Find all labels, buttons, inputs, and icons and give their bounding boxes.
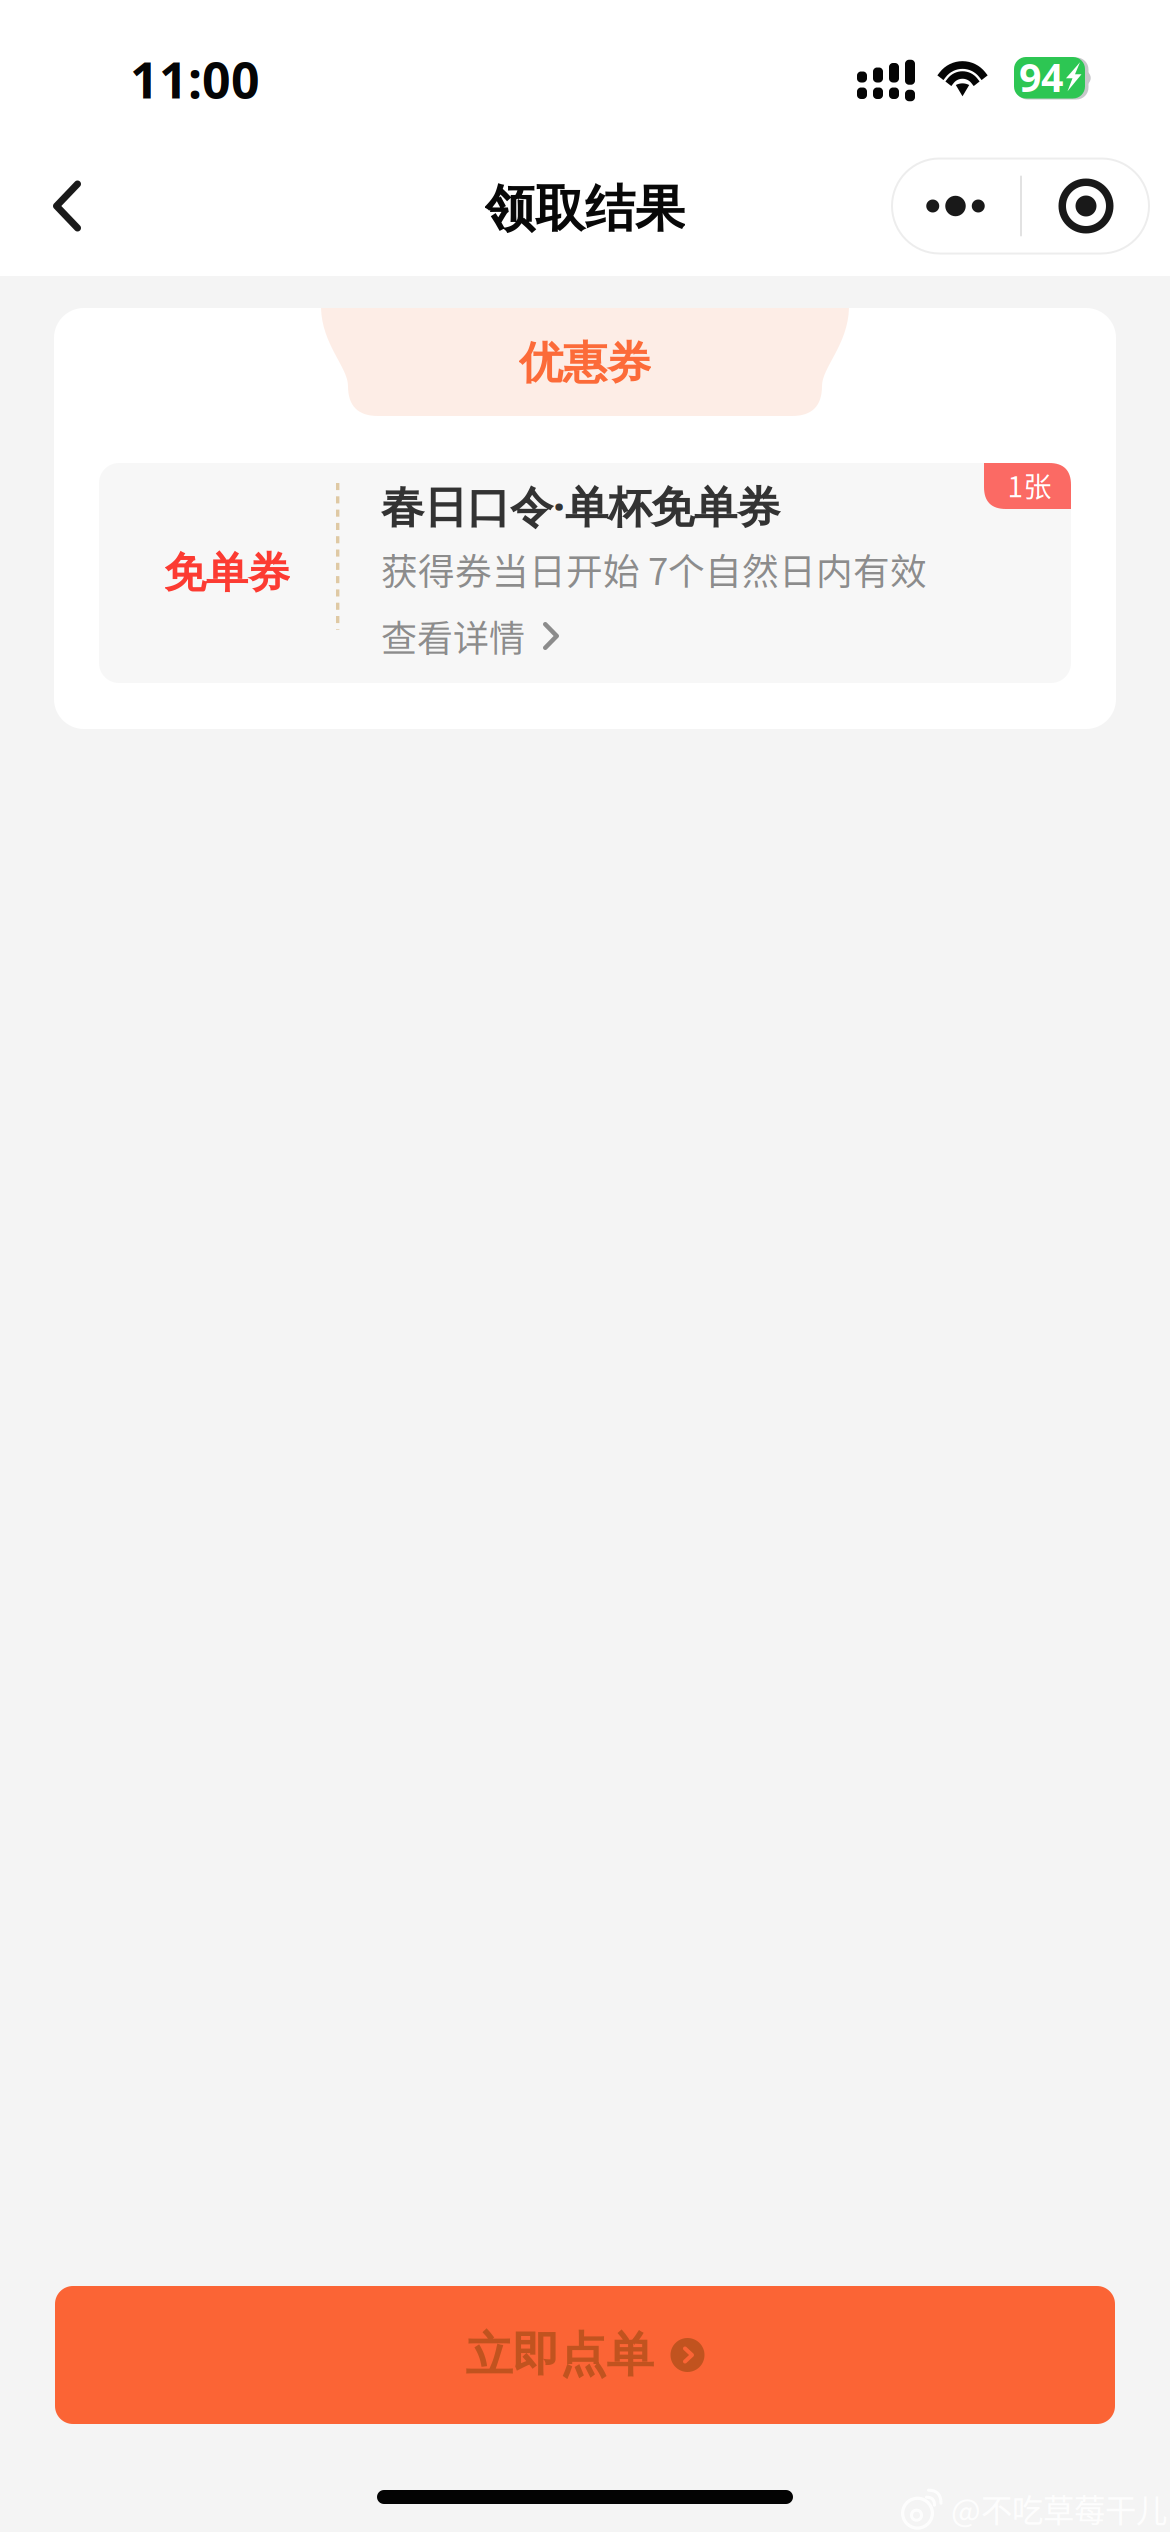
staticText: 免单券 <box>164 546 290 599</box>
staticText: 查看详情 <box>381 610 525 662</box>
staticText: 94 <box>1019 50 1063 104</box>
button[interactable]: Back <box>12 136 122 276</box>
staticText: 春日口令·单杯免单券 <box>381 477 780 535</box>
button[interactable]: More options and close mini program <box>891 136 1150 276</box>
button[interactable]: 立即点单 <box>55 2286 1115 2424</box>
staticText: @不吃草莓干儿 <box>951 2486 1167 2531</box>
staticText: 领取结果 <box>485 177 685 240</box>
staticText: 1张 <box>1007 465 1051 505</box>
staticText: 立即点单 <box>465 2325 653 2385</box>
staticText: 11:00 <box>130 45 260 113</box>
staticText: 优惠券 <box>519 335 651 391</box>
staticText: 获得券当日开始 7个自然日内有效 <box>381 542 927 596</box>
